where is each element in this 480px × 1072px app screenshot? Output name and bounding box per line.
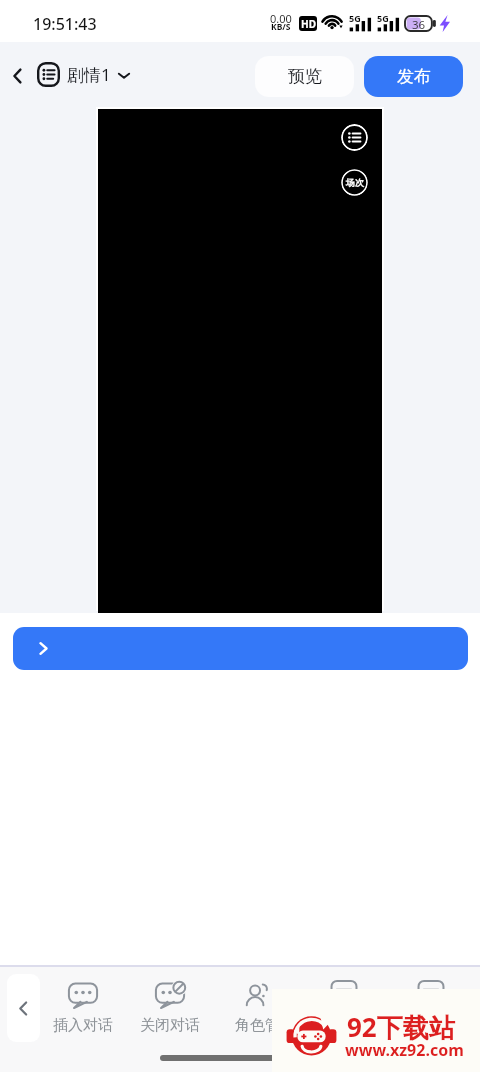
staticText: 角色管 — [235, 1016, 280, 1035]
staticText: 剧情1 — [67, 63, 111, 86]
staticText: 5G — [349, 12, 361, 24]
staticText: 场次 — [346, 177, 364, 188]
staticText: 5G — [377, 12, 389, 24]
button[interactable]: List — [341, 124, 368, 151]
staticText: 36 — [412, 17, 426, 33]
staticText: 发布 — [397, 66, 431, 87]
button[interactable]: 角色管 — [215, 972, 299, 1042]
staticText: 19:51:43 — [33, 13, 97, 35]
staticText: HD — [301, 17, 316, 31]
button[interactable]: 关闭对话 — [128, 972, 212, 1042]
staticText: www.xz92.com — [345, 1039, 464, 1061]
button[interactable]: Tool — [389, 972, 473, 1042]
button[interactable]: Scene item — [13, 627, 468, 670]
staticText: 0.00 — [270, 11, 292, 26]
button[interactable]: Back — [2, 60, 34, 92]
button[interactable]: 预览 — [255, 56, 354, 97]
button[interactable]: Scene — [341, 169, 368, 196]
staticText: KB/S — [271, 21, 291, 33]
button[interactable]: 剧情1 — [37, 58, 132, 91]
staticText: 插入对话 — [53, 1016, 113, 1035]
staticText: 92下载站 — [347, 1009, 455, 1045]
staticText: 预览 — [288, 66, 322, 87]
button[interactable]: Back — [7, 974, 40, 1042]
staticText: 关闭对话 — [140, 1016, 200, 1035]
button[interactable]: Tool — [302, 972, 386, 1042]
button[interactable]: 发布 — [364, 56, 463, 97]
button[interactable]: 插入对话 — [41, 972, 125, 1042]
